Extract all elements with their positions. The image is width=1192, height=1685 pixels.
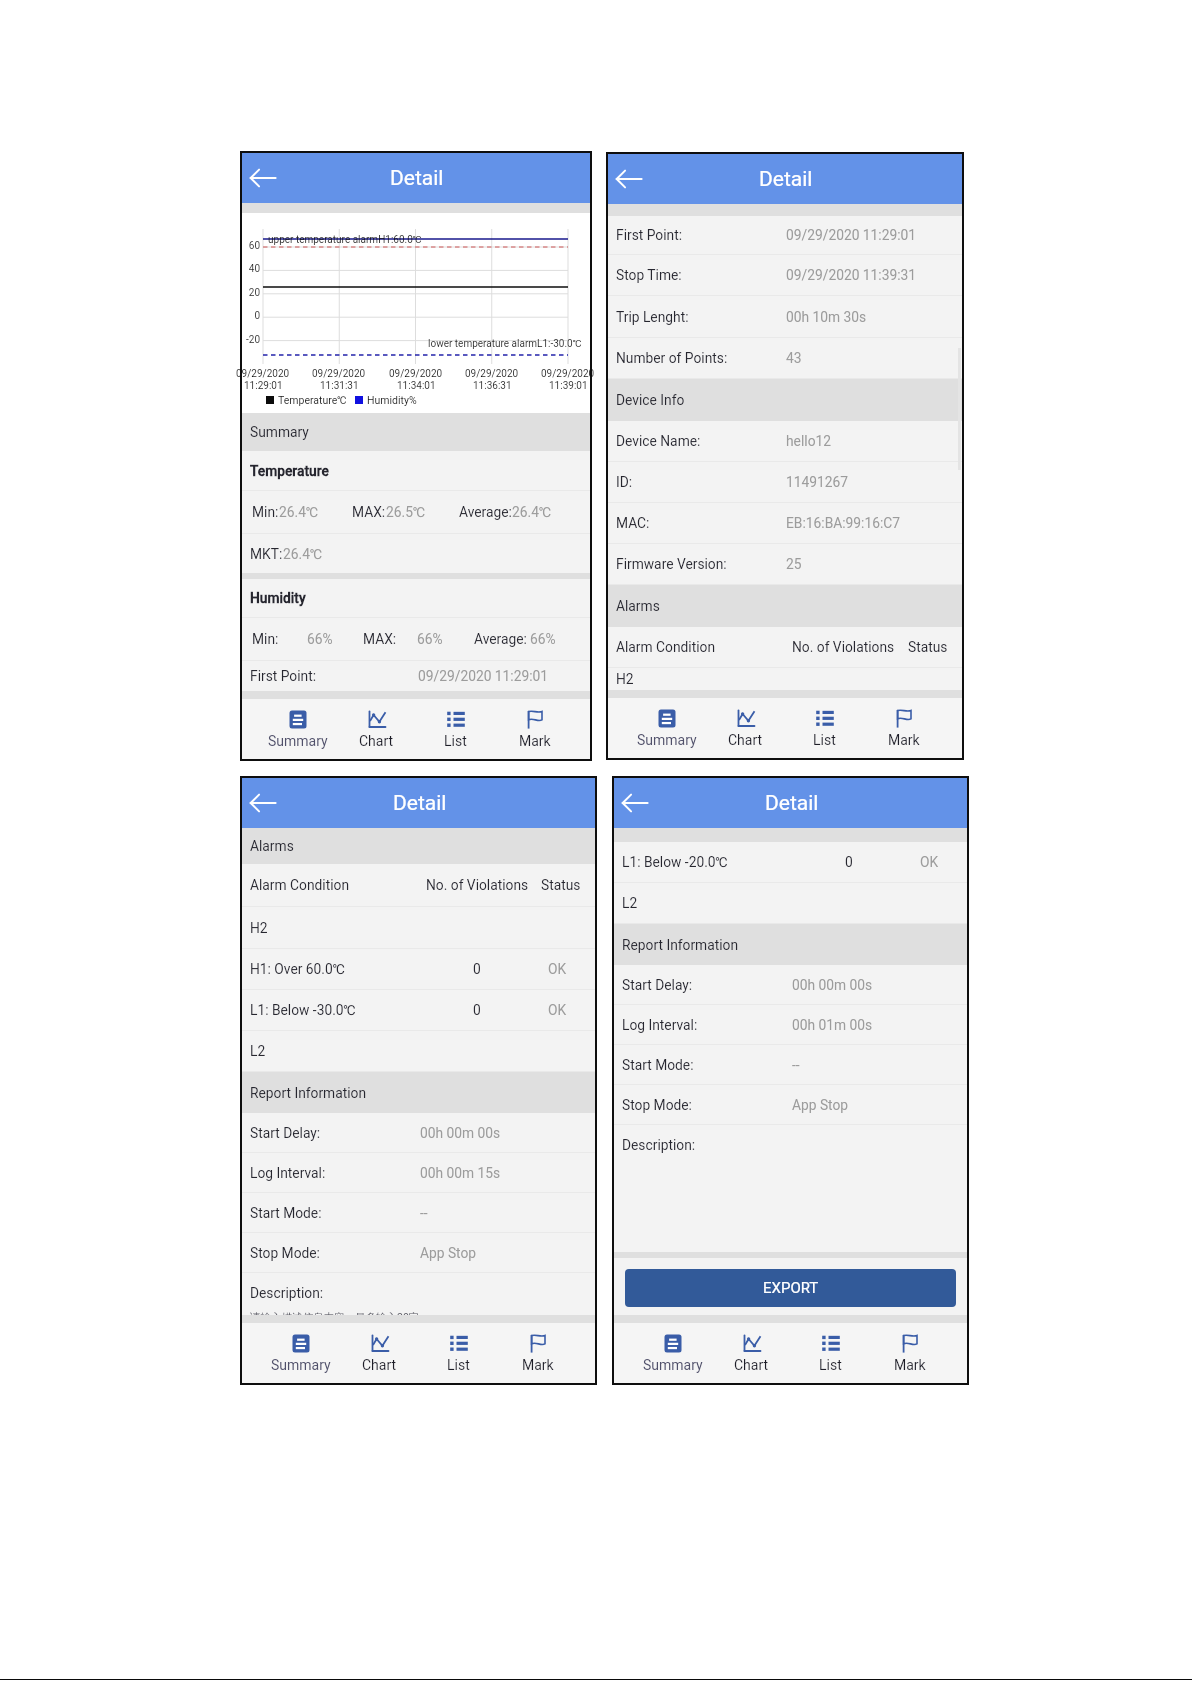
staticText: Summary: [271, 1357, 331, 1373]
staticText: 43: [786, 350, 802, 366]
button[interactable]: Log Interval:: [242, 1153, 595, 1193]
staticText: 66%: [417, 631, 443, 647]
staticText: Status: [908, 639, 948, 655]
button[interactable]: Log Interval:: [614, 1005, 967, 1045]
button[interactable]: Trip Lenght:: [608, 296, 962, 338]
staticText: Trip Lenght:: [616, 309, 689, 325]
button[interactable]: L2: [614, 883, 967, 924]
staticText: Description:: [622, 1137, 696, 1153]
staticText: Humidity%: [367, 394, 417, 406]
staticText: 00h 00m 15s: [420, 1165, 501, 1181]
staticText: H1: Over 60.0℃: [250, 961, 345, 977]
button[interactable]: First Point:: [608, 216, 962, 255]
button[interactable]: Back: [621, 791, 649, 815]
button[interactable]: ID:: [608, 462, 962, 503]
button[interactable]: Start Delay:: [242, 1113, 595, 1153]
staticText: 00h 00m 00s: [792, 977, 873, 993]
button[interactable]: MAC:: [608, 503, 962, 544]
staticText: EB:16:BA:99:16:C7: [786, 515, 900, 531]
staticText: Start Delay:: [250, 1125, 321, 1141]
button[interactable]: EXPORT: [625, 1269, 956, 1307]
staticText: L1: Below -30.0℃: [250, 1002, 356, 1018]
button[interactable]: Summary: [627, 698, 706, 758]
button[interactable]: H2: [242, 907, 595, 949]
staticText: Firmware Version:: [616, 556, 727, 572]
staticText: Stop Time:: [616, 267, 682, 283]
staticText: App Stop: [792, 1097, 849, 1113]
staticText: upper temperature alarmH1:60.0℃: [268, 234, 422, 246]
staticText: H2: [616, 671, 634, 687]
staticText: 11:31:31: [320, 380, 359, 392]
staticText: No. of Violations: [792, 639, 895, 655]
staticText: Temperature℃: [278, 394, 347, 406]
button[interactable]: Summary: [633, 1323, 712, 1383]
button[interactable]: Chart: [337, 699, 416, 759]
staticText: 11:34:01: [397, 380, 436, 392]
button[interactable]: Firmware Version:: [608, 544, 962, 585]
staticText: Min:: [252, 504, 279, 520]
button[interactable]: Start Delay:: [614, 965, 967, 1005]
button[interactable]: L1: Below -20.0℃: [614, 842, 967, 883]
button[interactable]: Chart: [340, 1323, 419, 1383]
button[interactable]: H1: Over 60.0℃: [242, 949, 595, 990]
staticText: 60: [239, 240, 260, 252]
button[interactable]: Stop Time:: [608, 255, 962, 296]
staticText: -20: [239, 334, 260, 346]
button[interactable]: Number of Points:: [608, 338, 962, 379]
staticText: 20: [239, 287, 260, 299]
staticText: 09/29/2020 11:39:31: [786, 267, 917, 283]
staticText: 26.4℃: [512, 504, 552, 520]
button[interactable]: Mark: [870, 1323, 949, 1383]
staticText: Device Info: [616, 392, 685, 408]
staticText: 09/29/2020: [389, 368, 443, 380]
button[interactable]: List: [785, 698, 864, 758]
staticText: Start Mode:: [250, 1205, 322, 1221]
button[interactable]: Stop Mode:: [614, 1085, 967, 1125]
button[interactable]: Device Name:: [608, 421, 962, 462]
staticText: MKT:: [250, 546, 283, 562]
staticText: Temperature: [250, 463, 329, 479]
button[interactable]: L2: [242, 1031, 595, 1072]
button[interactable]: Back: [249, 166, 277, 190]
staticText: 0: [473, 961, 481, 977]
staticText: Summary: [250, 424, 309, 440]
staticText: 0: [845, 854, 853, 870]
button[interactable]: Stop Mode:: [242, 1233, 595, 1273]
staticText: App Stop: [420, 1245, 477, 1261]
staticText: 26.4℃: [283, 546, 323, 562]
button[interactable]: Start Mode:: [242, 1193, 595, 1233]
staticText: Stop Mode:: [622, 1097, 692, 1113]
staticText: --: [792, 1057, 800, 1073]
staticText: lower temperature alarmL1:-30.0℃: [428, 338, 582, 350]
staticText: L1: Below -20.0℃: [622, 854, 728, 870]
staticText: Log Interval:: [622, 1017, 698, 1033]
button[interactable]: L1: Below -30.0℃: [242, 990, 595, 1031]
staticText: 25: [786, 556, 802, 572]
staticText: 09/29/2020: [465, 368, 519, 380]
button[interactable]: Back: [249, 791, 277, 815]
staticText: OK: [548, 1002, 567, 1018]
button[interactable]: List: [416, 699, 495, 759]
button[interactable]: Summary: [261, 1323, 340, 1383]
button[interactable]: Summary: [258, 699, 337, 759]
button[interactable]: Mark: [498, 1323, 577, 1383]
button[interactable]: List: [419, 1323, 498, 1383]
button[interactable]: List: [791, 1323, 870, 1383]
staticText: Report Information: [250, 1085, 367, 1101]
staticText: Chart: [362, 1357, 397, 1373]
staticText: Chart: [359, 733, 394, 749]
staticText: Chart: [728, 732, 763, 748]
button[interactable]: Chart: [712, 1323, 791, 1383]
staticText: Chart: [734, 1357, 769, 1373]
button[interactable]: Chart: [706, 698, 785, 758]
button[interactable]: Back: [615, 167, 643, 191]
button[interactable]: Mark: [864, 698, 943, 758]
staticText: 26.5℃: [386, 504, 426, 520]
button[interactable]: Start Mode:: [614, 1045, 967, 1085]
staticText: Report Information: [622, 937, 739, 953]
staticText: 11491267: [786, 474, 849, 490]
staticText: 11:29:01: [244, 380, 283, 392]
button[interactable]: Mark: [495, 699, 574, 759]
staticText: First Point:: [616, 227, 683, 243]
staticText: Alarm Condition: [616, 639, 716, 655]
